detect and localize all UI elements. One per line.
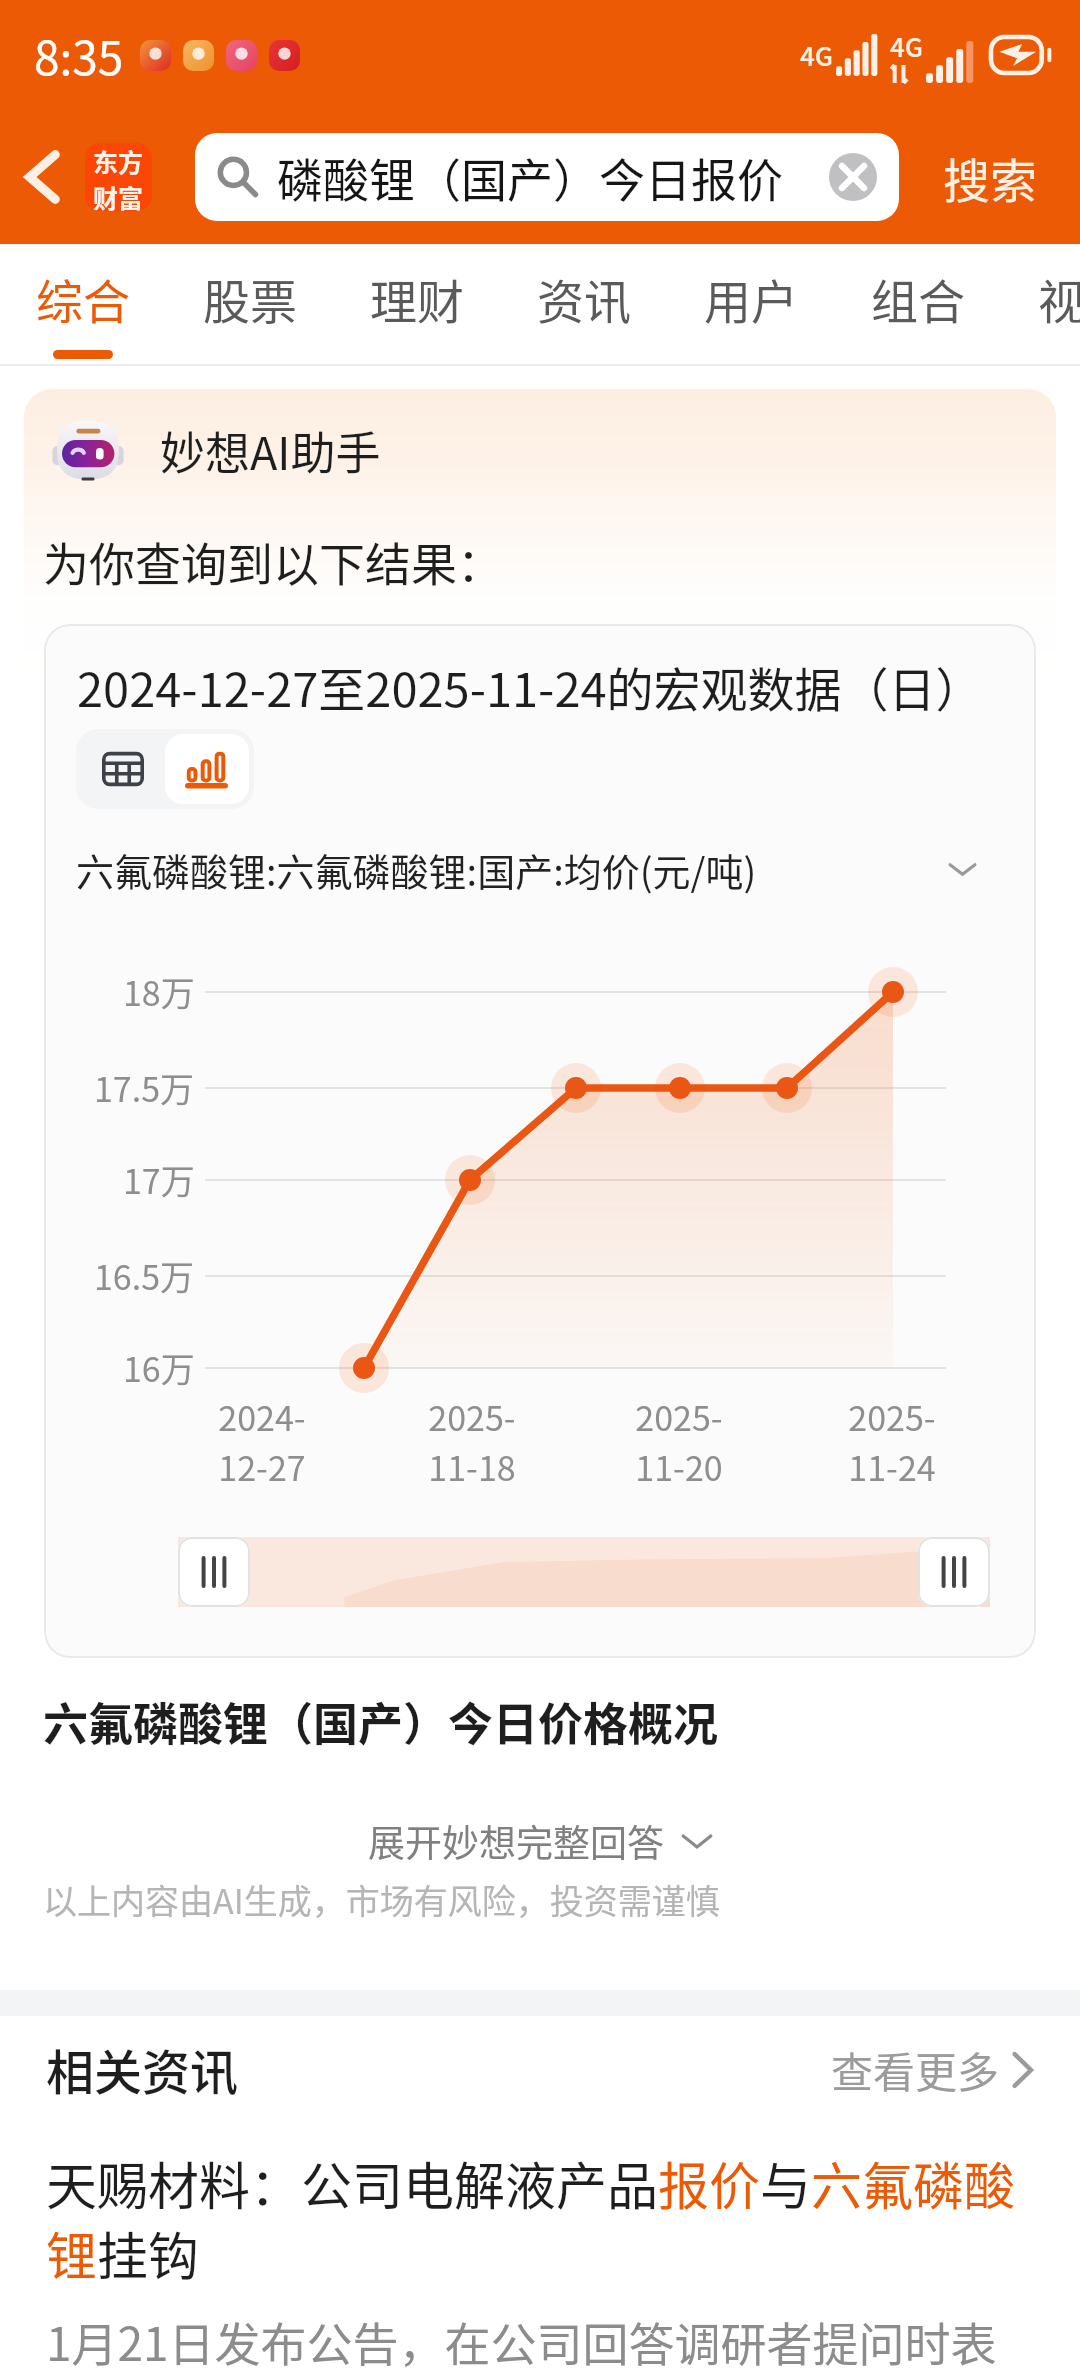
staticText: 用户 (704, 264, 798, 332)
button[interactable]: 用户 (704, 244, 871, 366)
staticText: 资讯 (537, 264, 631, 332)
staticText: 磷酸锂（国产）今日报价 (277, 144, 829, 211)
staticText: 综合 (36, 264, 130, 332)
button[interactable]: 图表视图 (165, 734, 249, 804)
staticText: 相关资讯 (46, 2034, 239, 2104)
button[interactable]: 天赐材料：公司电解液产品报价与六氟磷酸锂挂钩 (46, 2146, 1034, 2290)
button[interactable]: 返回 (0, 110, 85, 244)
button[interactable]: 表格视图 (81, 734, 165, 804)
staticText: 股票 (203, 264, 297, 332)
button[interactable]: 搜索 (899, 110, 1080, 244)
staticText: 4G (800, 36, 834, 74)
staticText: 组合 (871, 264, 965, 332)
staticText: 2025- 11-20 (635, 1392, 723, 1491)
staticText: 展开妙想完整回答 (368, 1814, 664, 1868)
staticText: 16.5万 (94, 1251, 195, 1300)
button[interactable]: 调整范围 (178, 1537, 250, 1607)
staticText: 2024-12-27至2025-11-24的宏观数据（日） (77, 652, 983, 720)
button[interactable]: 清除 (829, 153, 877, 201)
staticText: 17万 (123, 1155, 195, 1204)
staticText: 2025- 11-24 (848, 1392, 936, 1491)
staticText: 查看更多 (831, 2039, 1000, 2100)
button[interactable]: 资讯 (537, 244, 704, 366)
staticText: 东方 (93, 143, 144, 179)
staticText: 妙想AI助手 (160, 418, 381, 483)
staticText: 理财 (370, 264, 464, 332)
button[interactable]: 调整范围 (918, 1537, 990, 1607)
staticText: 为你查询到以下结果： (43, 528, 503, 595)
button[interactable]: 视 (1038, 244, 1080, 366)
button[interactable]: 磷酸锂（国产）今日报价 (195, 133, 899, 221)
button[interactable]: 妙想AI助手 (48, 410, 381, 490)
staticText: 搜索 (943, 143, 1037, 211)
button[interactable]: 综合 (36, 244, 203, 366)
staticText: 财富 (93, 179, 144, 211)
staticText: 六氟磷酸锂（国产）今日价格概况 (43, 1689, 719, 1754)
staticText: 六氟磷酸锂:六氟磷酸锂:国产:均价(元/吨) (76, 842, 949, 897)
button[interactable]: 组合 (871, 244, 1038, 366)
staticText: 2024- 12-27 (218, 1392, 306, 1491)
staticText: 以上内容由AI生成，市场有风险，投资需谨慎 (43, 1875, 720, 1924)
button[interactable]: 展开妙想完整回答 (24, 1814, 1056, 1868)
button[interactable]: 股票 (203, 244, 370, 366)
staticText: 1月21日发布公告，在公司回答调研者提问时表 (46, 2308, 997, 2375)
staticText: 16万 (123, 1343, 195, 1392)
button[interactable]: 理财 (370, 244, 537, 366)
staticText: 视 (1038, 264, 1080, 332)
staticText: 17.5万 (94, 1063, 195, 1112)
staticText: 2025- 11-18 (428, 1392, 516, 1491)
button[interactable]: 六氟磷酸锂:六氟磷酸锂:国产:均价(元/吨) (76, 842, 976, 897)
staticText: 8:35 (34, 22, 124, 89)
staticText: 18万 (123, 967, 195, 1016)
button[interactable]: 查看更多 (831, 2039, 1034, 2100)
staticText: 4G (890, 27, 924, 65)
